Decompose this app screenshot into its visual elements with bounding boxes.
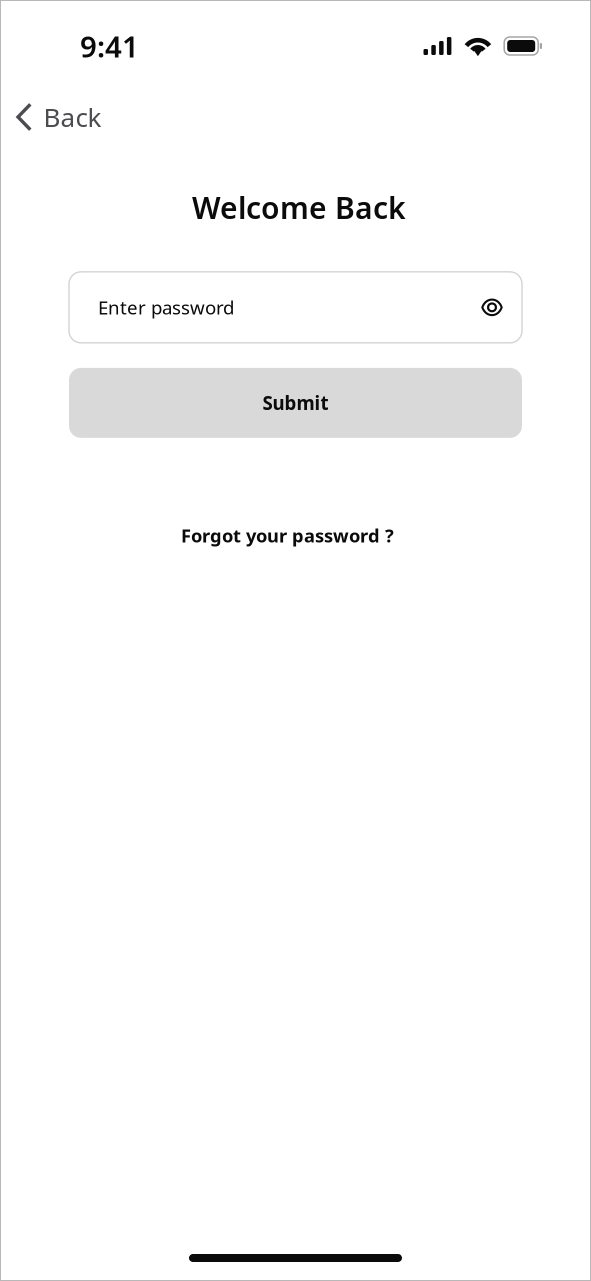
- staticText: Welcome Back: [192, 187, 406, 228]
- staticText: 9:41: [80, 26, 139, 66]
- button[interactable]: Show password: [481, 298, 503, 317]
- button[interactable]: Forgot your password ?: [169, 515, 422, 556]
- button[interactable]: Back: [0, 90, 119, 144]
- staticText: Back: [43, 99, 101, 135]
- button[interactable]: Submit: [69, 368, 522, 438]
- staticText: Forgot your password ?: [181, 523, 394, 548]
- staticText: Enter password: [98, 295, 234, 320]
- staticText: Submit: [262, 390, 328, 415]
